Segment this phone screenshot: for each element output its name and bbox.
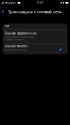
staticText: 9:41 xyxy=(37,1,44,4)
button[interactable]: Высокое качество xyxy=(3,43,67,54)
staticText: Высокое качество xyxy=(5,44,28,48)
staticText: Нет xyxy=(5,24,9,28)
button[interactable]: Высокая эффективность xyxy=(3,30,67,43)
staticText: MegaFon xyxy=(4,1,16,4)
staticText: трафика сотовой сети xyxy=(5,39,23,41)
staticText: Высокая эффективность xyxy=(5,32,36,35)
staticText: Трансляции с сотовой сети xyxy=(8,9,62,14)
button[interactable]: Нет xyxy=(3,24,67,30)
button[interactable]: Back xyxy=(0,8,6,15)
staticText: Видео высокого качества xyxy=(5,49,26,51)
staticText: Передача видео с меньшим расходом xyxy=(5,36,34,38)
